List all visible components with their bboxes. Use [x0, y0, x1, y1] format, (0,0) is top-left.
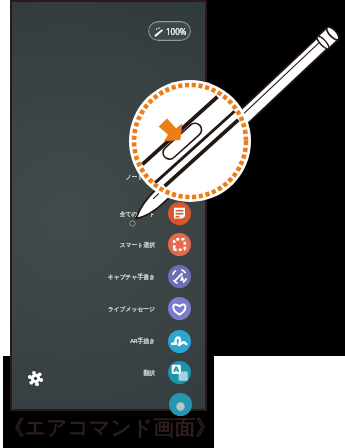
button[interactable]: スマート選択: [40, 232, 191, 256]
staticText: 100%: [166, 26, 187, 37]
staticText: キャプチャ手書き: [107, 273, 155, 280]
staticText: AR手描き: [130, 337, 155, 345]
button[interactable]: 全てのノート: [40, 201, 191, 225]
button[interactable]: Settings: [22, 365, 48, 391]
staticText: スマート選択: [119, 241, 155, 248]
button[interactable]: キャプチャ手書き: [40, 264, 191, 288]
button[interactable]: ノート作成: [40, 164, 191, 188]
button[interactable]: S Pen battery 100 percent: [148, 21, 191, 41]
staticText: ノート作成: [125, 173, 155, 180]
staticText: 《エアコマンド画面》: [3, 415, 214, 441]
button[interactable]: 翻訳: [40, 360, 191, 384]
staticText: 翻訳: [143, 369, 155, 376]
button[interactable]: ライブメッセージ: [40, 296, 191, 320]
button[interactable]: AR手描き: [40, 329, 191, 353]
staticText: ライブメッセージ: [107, 305, 155, 312]
staticText: 全てのノート: [119, 210, 155, 217]
